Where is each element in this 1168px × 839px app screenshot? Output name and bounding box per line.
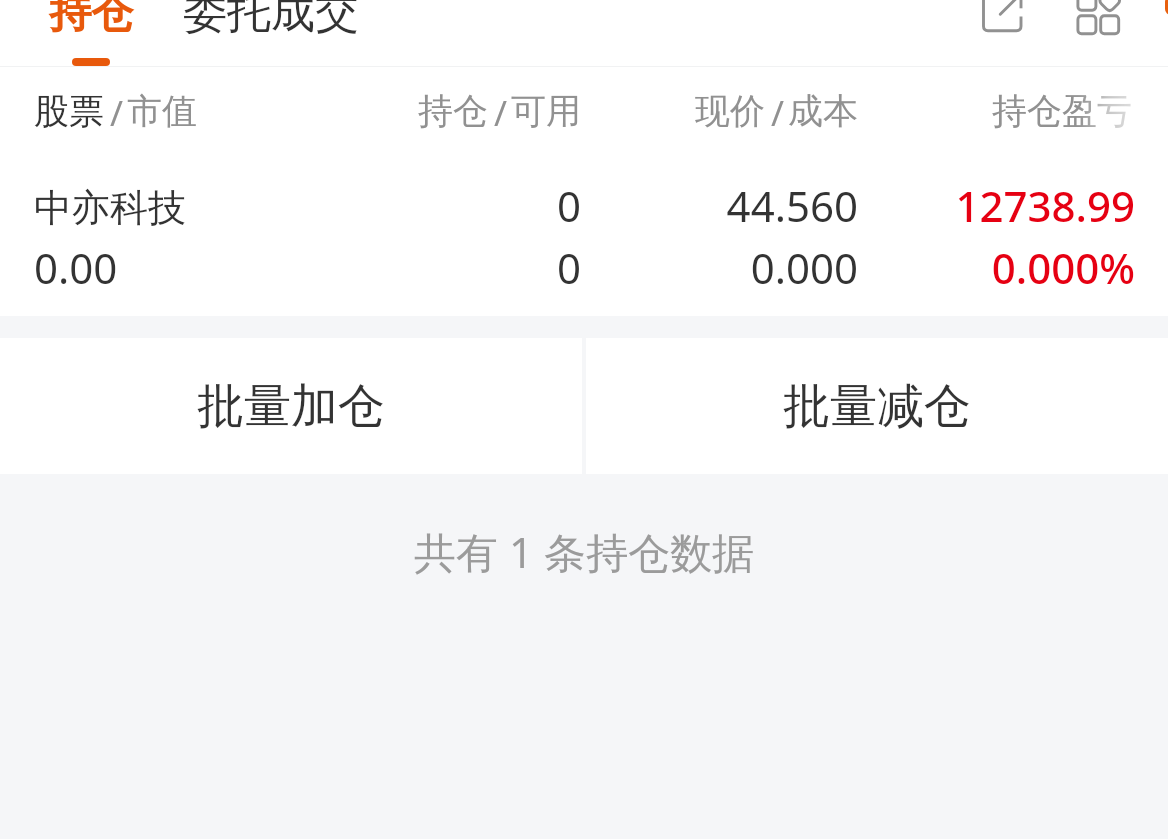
staticText: 持仓 <box>49 0 133 40</box>
button[interactable]: 批量加仓 <box>0 338 582 474</box>
staticText: 中亦科技 <box>34 184 186 232</box>
staticText: 现价 <box>695 89 765 133</box>
staticText: 0 <box>161 177 581 234</box>
staticText: 批量加仓 <box>197 377 385 436</box>
staticText: 12738.99 <box>715 177 1135 234</box>
staticText: / <box>771 89 785 137</box>
staticText: 0.000 <box>438 239 858 296</box>
button[interactable]: 批量减仓 <box>586 338 1168 474</box>
staticText: 持仓盈亏 <box>992 89 1132 133</box>
staticText: 0.00 <box>34 239 118 296</box>
button[interactable]: All apps <box>1046 0 1138 66</box>
button[interactable]: Open in new window <box>952 0 1044 66</box>
staticText: 股票 <box>34 89 104 133</box>
staticText: 44.560 <box>438 177 858 234</box>
button[interactable]: 持仓 <box>20 0 162 66</box>
staticText: 0 <box>161 239 581 296</box>
staticText: 成本 <box>788 89 858 133</box>
staticText: 委托成交 <box>183 0 359 40</box>
staticText: 可用 <box>511 89 581 133</box>
button[interactable]: 委托成交 <box>161 0 381 66</box>
staticText: 批量减仓 <box>783 377 971 436</box>
staticText: / <box>110 89 124 137</box>
staticText: / <box>494 89 508 137</box>
staticText: 0.000% <box>715 239 1135 296</box>
staticText: 共有 1 条持仓数据 <box>0 523 1168 580</box>
staticText: 持仓 <box>418 89 488 133</box>
staticText: 市值 <box>127 89 197 133</box>
button[interactable]: 中亦科技 <box>0 152 1168 316</box>
